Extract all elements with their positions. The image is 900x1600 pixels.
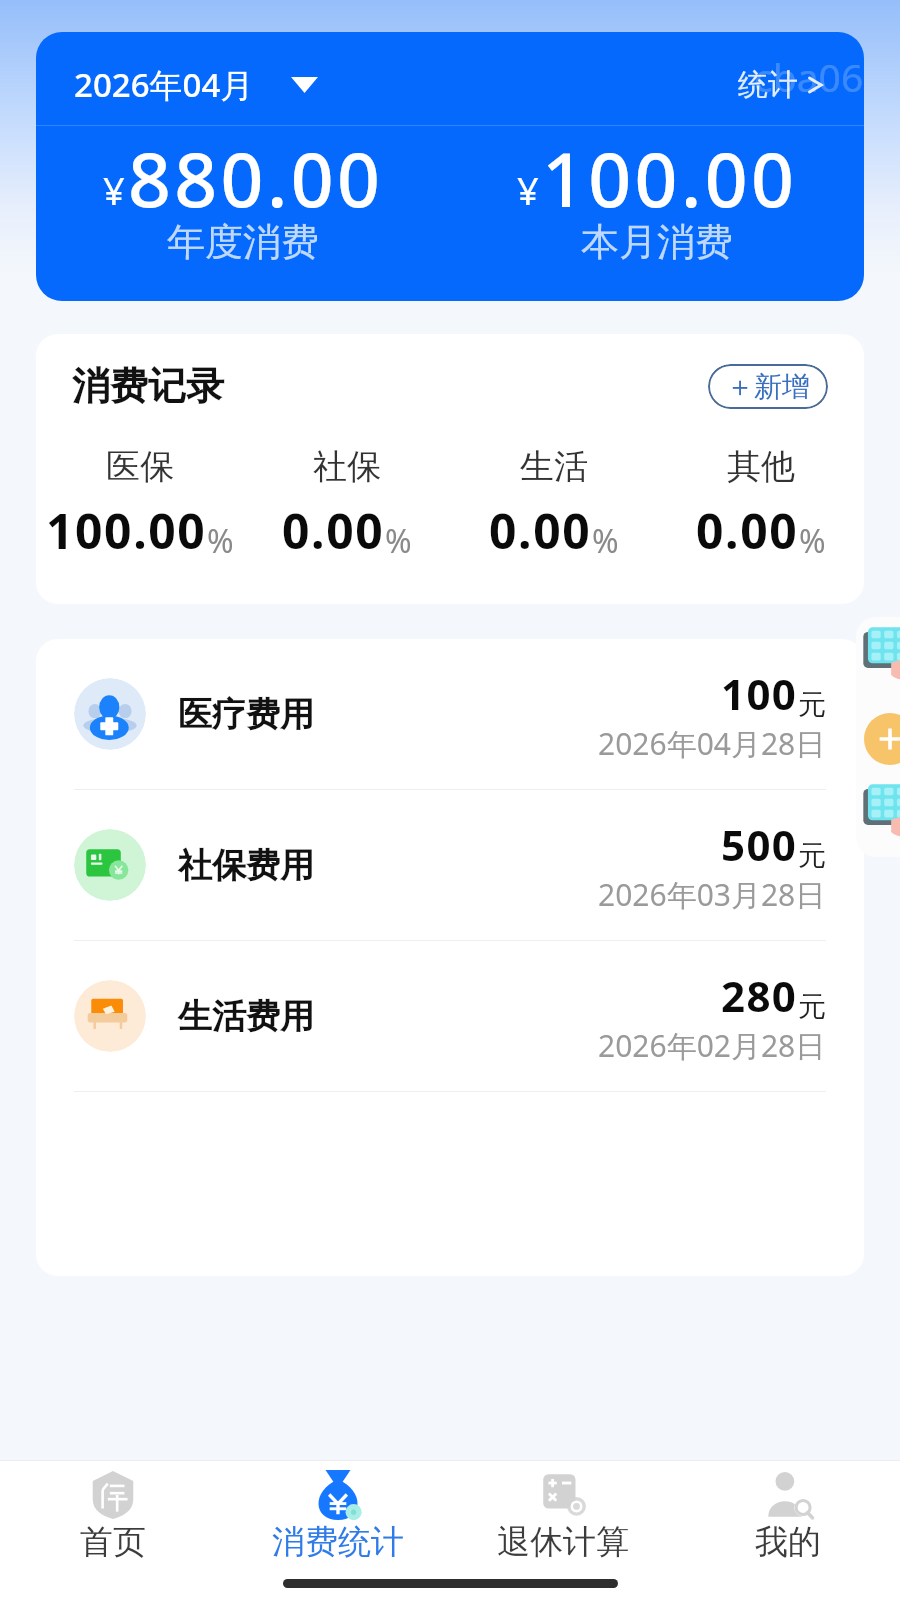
staticText: 100.00 <box>542 127 798 229</box>
staticText: 退休计算 <box>497 1521 629 1563</box>
staticText: 2026年03月28日 <box>598 874 826 915</box>
staticText: ¥ <box>103 164 125 216</box>
button[interactable]: ＋新增 <box>708 364 828 409</box>
staticText: % <box>207 519 234 563</box>
staticText: 0.00 <box>282 498 385 563</box>
staticText: 880.00 <box>128 127 384 229</box>
staticText: 生活 <box>520 445 588 488</box>
staticText: cba06 <box>754 50 864 103</box>
staticText: 消费记录 <box>72 362 224 410</box>
staticText: 首页 <box>80 1521 146 1563</box>
staticText: 社保 <box>313 445 381 488</box>
staticText: 100.00 <box>46 498 207 563</box>
staticText: % <box>385 519 412 563</box>
staticText: % <box>592 519 619 563</box>
staticText: 2026年04月 <box>74 62 254 107</box>
button[interactable]: 我的 <box>675 1461 900 1563</box>
button[interactable]: Calculator shortcut <box>861 782 900 840</box>
staticText: 元 <box>798 687 826 722</box>
button[interactable]: 统计 <box>738 66 826 104</box>
staticText: 社保费用 <box>178 844 314 887</box>
staticText: 500 <box>721 816 798 873</box>
button[interactable]: Add record <box>864 713 900 765</box>
staticText: 年度消费 <box>167 218 319 266</box>
button[interactable]: 消费统计 <box>225 1461 450 1563</box>
button[interactable]: 退休计算 <box>450 1461 675 1563</box>
button[interactable]: Calculator shortcut <box>861 625 900 683</box>
button[interactable]: 医疗费用 <box>74 639 826 789</box>
staticText: % <box>799 519 826 563</box>
staticText: 生活费用 <box>178 995 314 1038</box>
button[interactable]: 首页 <box>0 1461 225 1563</box>
staticText: 2026年02月28日 <box>598 1025 826 1066</box>
staticText: 2026年04月28日 <box>598 723 826 764</box>
staticText: 我的 <box>755 1521 821 1563</box>
staticText: 100 <box>721 665 798 722</box>
button[interactable]: 2026年04月 <box>74 62 318 107</box>
staticText: 0.00 <box>489 498 592 563</box>
button[interactable]: 社保费用 <box>74 790 826 940</box>
staticText: 元 <box>798 838 826 873</box>
staticText: 0.00 <box>696 498 799 563</box>
button[interactable]: 生活费用 <box>74 941 826 1091</box>
staticText: 元 <box>798 989 826 1024</box>
staticText: 医保 <box>106 445 174 488</box>
staticText: 医疗费用 <box>178 693 314 736</box>
staticText: ＋新增 <box>726 369 810 404</box>
staticText: ¥ <box>517 164 539 216</box>
staticText: 280 <box>721 967 798 1024</box>
staticText: 统计 <box>738 66 798 104</box>
staticText: 消费统计 <box>272 1521 404 1563</box>
staticText: 本月消费 <box>581 218 733 266</box>
staticText: 其他 <box>727 445 795 488</box>
